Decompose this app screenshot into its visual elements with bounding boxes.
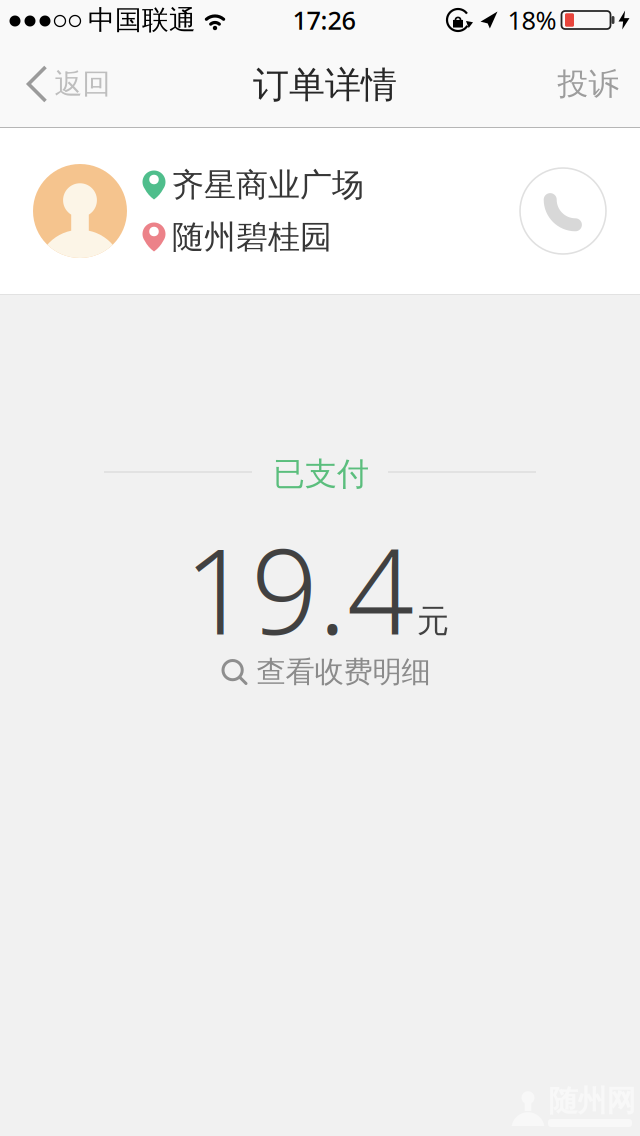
staticText: 已支付 [273, 454, 369, 494]
staticText: 中国联通 [88, 4, 196, 36]
staticText: 19.4 [184, 511, 414, 667]
button[interactable]: 投诉 [547, 40, 640, 128]
staticText: 订单详情 [253, 63, 397, 107]
staticText: 18% [507, 3, 556, 37]
staticText: 齐星商业广场 [172, 165, 364, 205]
staticText: 查看收费明细 [256, 654, 430, 690]
button[interactable]: 拨打电话 [519, 167, 607, 255]
button[interactable]: 返回 [5, 40, 120, 128]
staticText: 投诉 [557, 65, 619, 103]
staticText: 元 [417, 601, 449, 641]
staticText: 随州碧桂园 [172, 217, 332, 257]
staticText: 返回 [54, 67, 110, 101]
button[interactable]: 查看收费明细 [213, 648, 438, 696]
staticText: 17:26 [292, 3, 355, 37]
staticText: 随州网 [548, 1083, 635, 1119]
